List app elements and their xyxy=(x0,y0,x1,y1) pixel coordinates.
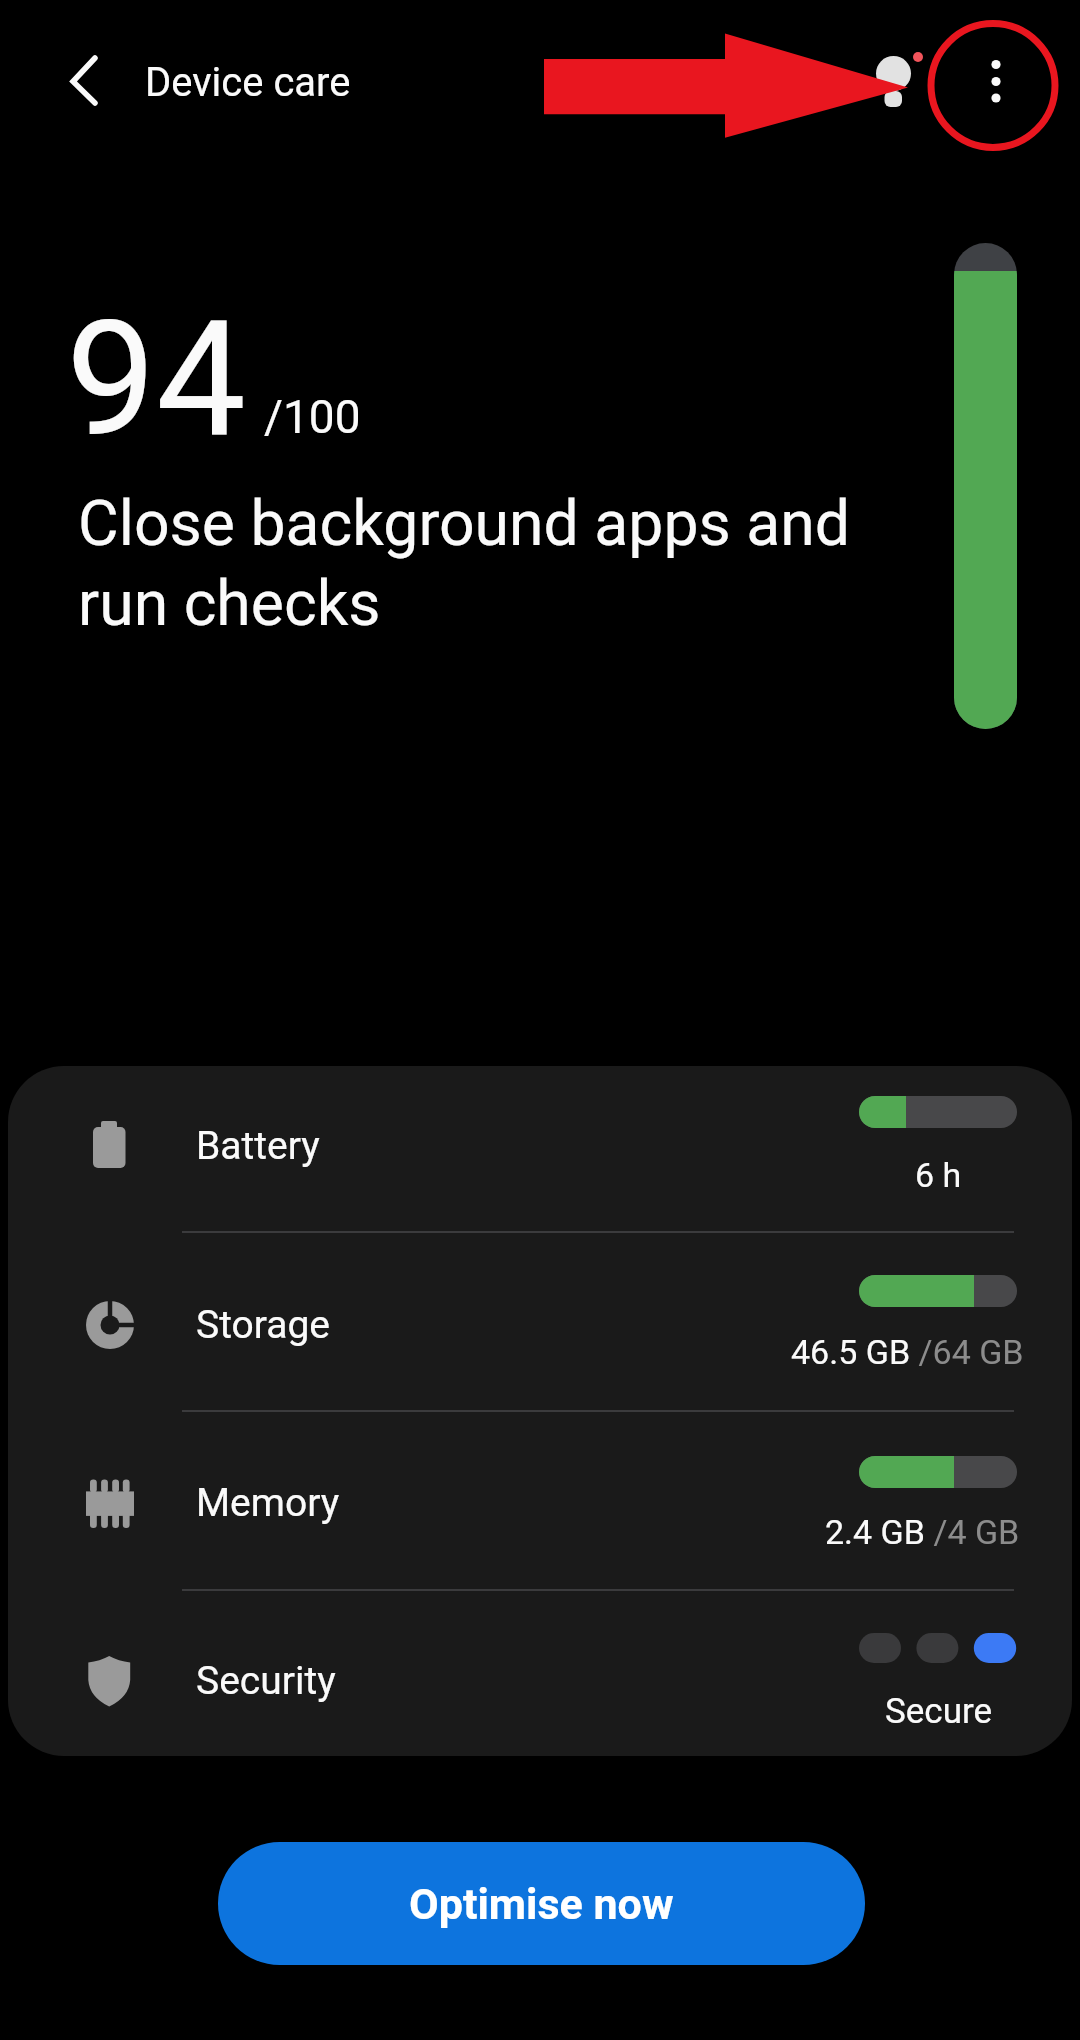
button[interactable] xyxy=(940,25,1050,145)
staticText: 6 h xyxy=(915,1155,962,1195)
staticText: 94 xyxy=(66,286,246,474)
staticText: 2.4 GB /4 GB xyxy=(825,1512,1020,1552)
staticText: Device care xyxy=(145,59,351,106)
button[interactable]: Optimise now xyxy=(218,1842,865,1965)
staticText: /100 xyxy=(264,390,361,444)
staticText: Optimise now xyxy=(409,1879,674,1929)
button[interactable] xyxy=(8,1232,1072,1411)
staticText: Memory xyxy=(196,1480,340,1526)
staticText: Storage xyxy=(196,1302,331,1348)
staticText: Close background apps and run checks xyxy=(78,487,851,641)
staticText: Security xyxy=(196,1658,336,1704)
button[interactable] xyxy=(8,1590,1072,1756)
staticText: 46.5 GB /64 GB xyxy=(791,1332,1024,1372)
button[interactable] xyxy=(45,35,125,125)
button[interactable] xyxy=(8,1411,1072,1590)
staticText: Secure xyxy=(885,1691,993,1732)
button[interactable] xyxy=(8,1066,1072,1232)
staticText: Battery xyxy=(196,1123,320,1169)
